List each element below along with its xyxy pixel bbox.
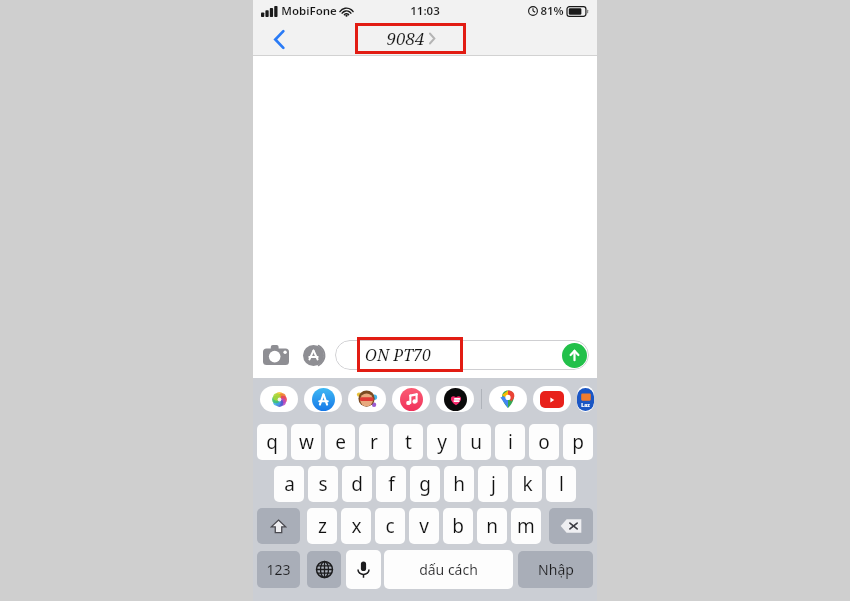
button[interactable]: x bbox=[341, 508, 371, 544]
button[interactable]: App bbox=[577, 386, 594, 412]
staticText: 81% bbox=[540, 3, 564, 19]
button[interactable]: r bbox=[359, 424, 389, 460]
button[interactable]: e bbox=[325, 424, 355, 460]
button[interactable]: h bbox=[444, 466, 474, 502]
button[interactable]: v bbox=[409, 508, 439, 544]
staticText: f bbox=[388, 471, 395, 497]
staticText: 9084 bbox=[386, 27, 425, 50]
staticText: e bbox=[335, 429, 346, 455]
staticText: y bbox=[437, 429, 447, 455]
button[interactable]: Dictate bbox=[346, 550, 381, 589]
staticText: h bbox=[453, 471, 465, 497]
staticText: i bbox=[508, 429, 513, 455]
button[interactable]: c bbox=[375, 508, 405, 544]
button[interactable]: App bbox=[489, 386, 527, 412]
staticText: a bbox=[284, 471, 295, 497]
button[interactable]: 123 bbox=[257, 551, 300, 588]
button[interactable]: Apps bbox=[298, 340, 328, 370]
staticText: r bbox=[370, 429, 378, 455]
staticText: p bbox=[572, 429, 584, 455]
button[interactable]: l bbox=[546, 466, 576, 502]
staticText: Laz bbox=[581, 402, 590, 409]
button[interactable]: Nhập bbox=[518, 551, 593, 588]
staticText: z bbox=[318, 513, 327, 539]
staticText: q bbox=[266, 429, 278, 455]
button[interactable]: App bbox=[260, 386, 298, 412]
staticText: ON PT70 bbox=[365, 344, 431, 366]
button[interactable]: i bbox=[495, 424, 525, 460]
button[interactable]: j bbox=[478, 466, 508, 502]
button[interactable]: q bbox=[257, 424, 287, 460]
staticText: Nhập bbox=[538, 560, 574, 579]
button[interactable]: z bbox=[307, 508, 337, 544]
button[interactable]: Change keyboard bbox=[307, 551, 341, 588]
button[interactable]: Backspace bbox=[549, 508, 593, 544]
button[interactable]: App bbox=[304, 386, 342, 412]
button[interactable]: u bbox=[461, 424, 491, 460]
button[interactable]: Camera bbox=[261, 340, 291, 370]
button[interactable]: Back bbox=[263, 23, 295, 55]
staticText: v bbox=[419, 513, 429, 539]
button[interactable]: App bbox=[533, 386, 571, 412]
button[interactable]: App bbox=[392, 386, 430, 412]
button[interactable]: Send bbox=[562, 343, 587, 368]
staticText: u bbox=[470, 429, 482, 455]
button[interactable]: y bbox=[427, 424, 457, 460]
staticText: o bbox=[538, 429, 550, 455]
staticText: n bbox=[486, 513, 498, 539]
button[interactable]: o bbox=[529, 424, 559, 460]
button[interactable]: w bbox=[291, 424, 321, 460]
staticText: t bbox=[405, 429, 412, 455]
button[interactable]: n bbox=[477, 508, 507, 544]
staticText: dấu cách bbox=[419, 560, 478, 579]
staticText: k bbox=[522, 471, 533, 497]
button[interactable]: d bbox=[342, 466, 372, 502]
button[interactable]: Send bbox=[335, 340, 589, 370]
staticText: 11:03 bbox=[410, 3, 440, 19]
staticText: x bbox=[351, 513, 362, 539]
button[interactable]: Shift bbox=[257, 508, 300, 544]
button[interactable]: 9084 bbox=[355, 23, 466, 54]
button[interactable]: b bbox=[443, 508, 473, 544]
button[interactable]: dấu cách bbox=[384, 550, 513, 589]
staticText: 123 bbox=[266, 560, 291, 579]
staticText: c bbox=[385, 513, 395, 539]
staticText: s bbox=[318, 471, 328, 497]
staticText: d bbox=[351, 471, 363, 497]
button[interactable]: g bbox=[410, 466, 440, 502]
button[interactable]: t bbox=[393, 424, 423, 460]
button[interactable]: App bbox=[348, 386, 386, 412]
staticText: g bbox=[419, 471, 431, 497]
button[interactable]: a bbox=[274, 466, 304, 502]
staticText: m bbox=[517, 513, 535, 539]
staticText: j bbox=[491, 471, 496, 497]
staticText: MobiFone bbox=[281, 3, 337, 19]
button[interactable]: s bbox=[308, 466, 338, 502]
button[interactable]: App bbox=[436, 386, 474, 412]
button[interactable]: k bbox=[512, 466, 542, 502]
button[interactable]: m bbox=[511, 508, 541, 544]
button[interactable]: f bbox=[376, 466, 406, 502]
button[interactable]: p bbox=[563, 424, 593, 460]
staticText: l bbox=[559, 471, 564, 497]
staticText: w bbox=[299, 429, 314, 455]
staticText: b bbox=[452, 513, 464, 539]
